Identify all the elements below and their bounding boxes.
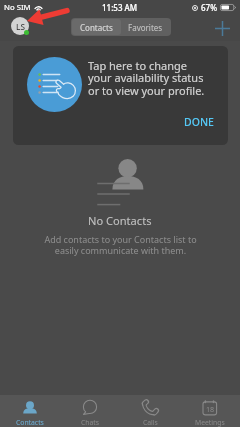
staticText: 67% [201, 2, 217, 13]
staticText: DONE [184, 115, 214, 129]
staticText: Tap here to change your availability sta… [88, 58, 205, 98]
button[interactable]: Profile and availability [11, 17, 29, 35]
button[interactable]: DONE [176, 109, 222, 135]
staticText: LS [16, 21, 25, 32]
staticText: Calls [143, 418, 158, 427]
staticText: Meetings [195, 418, 225, 427]
staticText: Chats [81, 418, 100, 427]
button[interactable]: Contacts [72, 19, 121, 35]
staticText: 11:53 AM [102, 2, 138, 13]
staticText: No Contacts [88, 213, 152, 228]
button[interactable]: Favorites [121, 19, 170, 35]
button[interactable]: Chats [60, 395, 120, 427]
button[interactable]: Add contact [209, 15, 235, 41]
staticText: Contacts [80, 22, 113, 33]
staticText: Favorites [128, 22, 163, 33]
button[interactable]: Contacts [0, 395, 60, 427]
staticText: No SIM [4, 2, 31, 13]
button[interactable]: 18 [180, 395, 240, 427]
staticText: Contacts [16, 418, 44, 427]
button[interactable]: Calls [120, 395, 180, 427]
staticText: 18 [206, 404, 215, 414]
staticText: Add contacts to your Contacts list to ea… [44, 233, 197, 256]
